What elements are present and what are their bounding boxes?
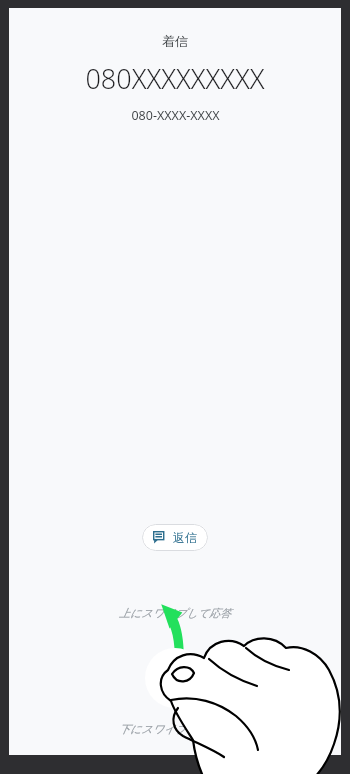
staticText: 080XXXXXXXXX	[85, 60, 265, 97]
staticText: 080-XXXX-XXXX	[131, 107, 220, 124]
staticText: 返信	[173, 530, 197, 545]
button[interactable]: 返信	[142, 524, 208, 551]
staticText: 上にスワイプして応答	[119, 606, 231, 620]
staticText: 下にスワイプして拒否	[119, 722, 231, 736]
button[interactable]: Answer call	[145, 648, 205, 708]
staticText: 着信	[162, 33, 188, 49]
